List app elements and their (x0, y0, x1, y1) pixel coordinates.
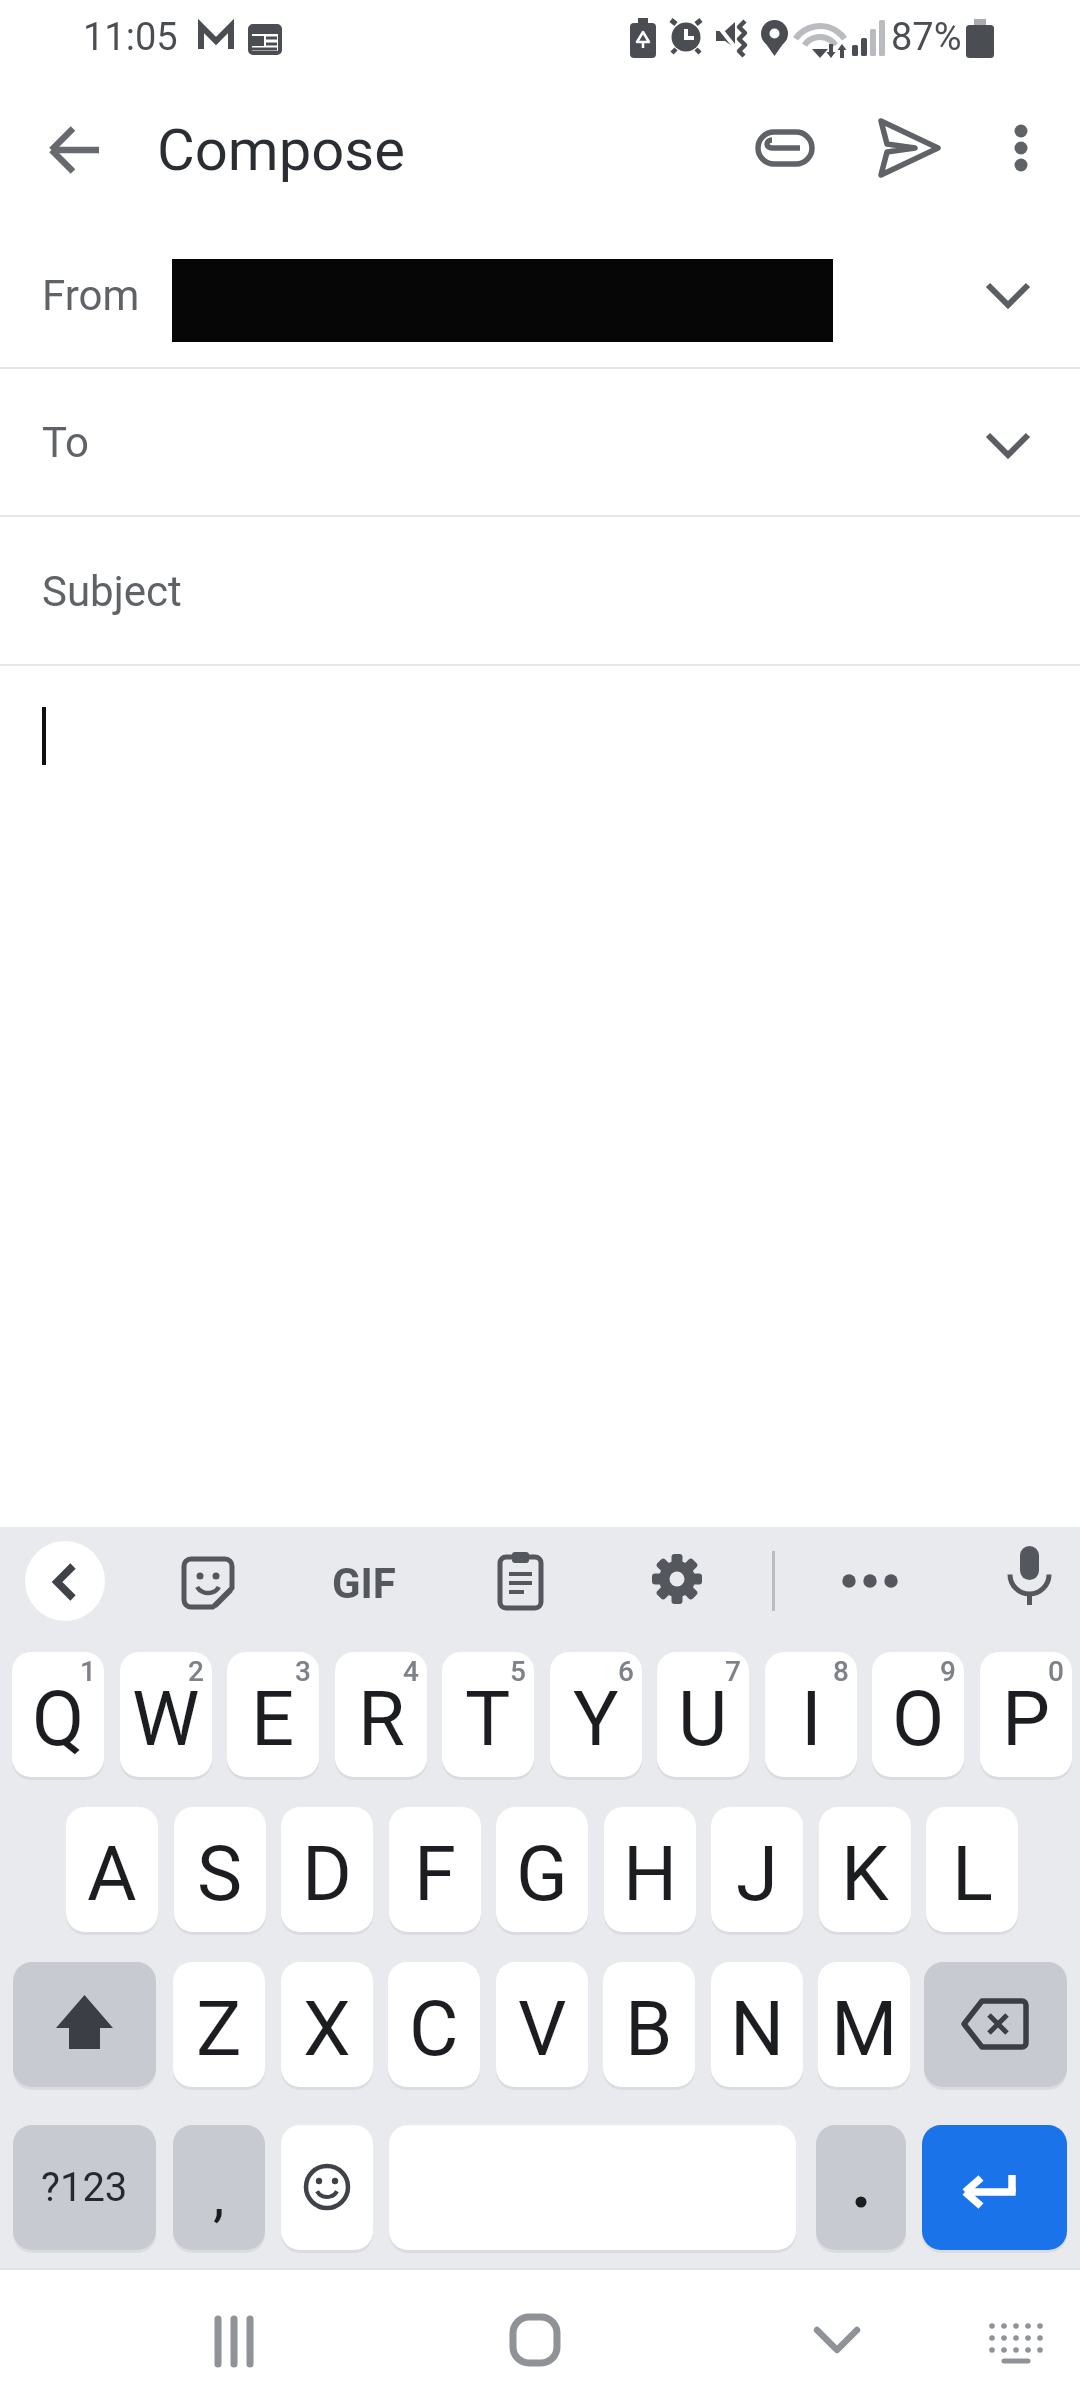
button[interactable]: C (388, 1962, 480, 2087)
button[interactable] (922, 2125, 1067, 2250)
staticText: 7 (725, 1655, 741, 1688)
button[interactable]: T (442, 1652, 534, 1777)
staticText: E (251, 1674, 295, 1763)
staticText: F (414, 1829, 457, 1918)
button[interactable] (738, 100, 834, 196)
staticText: 2 (188, 1655, 204, 1688)
staticText: 0 (1048, 1655, 1064, 1688)
button[interactable]: M (818, 1962, 910, 2087)
button[interactable] (652, 1553, 702, 1605)
staticText: 9 (940, 1655, 956, 1688)
button[interactable] (816, 2125, 906, 2250)
button[interactable]: G (496, 1807, 588, 1932)
button[interactable] (25, 1541, 105, 1621)
button[interactable]: From (0, 222, 1080, 368)
staticText: M (831, 1984, 898, 2073)
button[interactable]: V (496, 1962, 588, 2087)
staticText: D (302, 1829, 352, 1918)
button[interactable] (861, 100, 957, 196)
staticText: U (678, 1674, 728, 1763)
staticText: GIF (332, 1559, 396, 1608)
staticText: W (132, 1674, 200, 1763)
staticText: J (736, 1829, 778, 1918)
staticText: A (87, 1829, 137, 1918)
button[interactable]: Subject (0, 517, 1080, 665)
staticText: ?123 (41, 2164, 128, 2211)
staticText: V (518, 1984, 567, 2073)
button[interactable] (795, 2305, 879, 2375)
staticText: R (358, 1674, 405, 1763)
button[interactable]: P (980, 1652, 1072, 1777)
button[interactable] (832, 1567, 908, 1595)
button[interactable] (13, 1962, 156, 2087)
staticText: 4 (403, 1655, 419, 1688)
button[interactable]: X (281, 1962, 373, 2087)
staticText: , (213, 2161, 225, 2229)
staticText: From (42, 271, 140, 320)
staticText: 5 (510, 1655, 526, 1688)
button[interactable] (1000, 1543, 1060, 1617)
staticText: B (625, 1984, 673, 2073)
staticText: Z (196, 1984, 242, 2073)
staticText: Y (573, 1674, 619, 1763)
button[interactable]: D (281, 1807, 373, 1932)
staticText: T (465, 1674, 511, 1763)
staticText: 87% (891, 15, 962, 60)
staticText: 8 (833, 1655, 849, 1688)
button[interactable]: B (603, 1962, 695, 2087)
staticText: Subject (42, 567, 182, 616)
button[interactable]: E (227, 1652, 319, 1777)
staticText: 6 (618, 1655, 634, 1688)
button[interactable]: I (765, 1652, 857, 1777)
button[interactable]: W (120, 1652, 212, 1777)
button[interactable]: U (657, 1652, 749, 1777)
button[interactable]: H (604, 1807, 696, 1932)
staticText: P (1002, 1674, 1050, 1763)
button[interactable]: Y (550, 1652, 642, 1777)
button[interactable]: A (66, 1807, 158, 1932)
button[interactable] (192, 2300, 276, 2384)
button[interactable]: L (926, 1807, 1018, 1932)
button[interactable]: , (173, 2125, 265, 2250)
button[interactable]: Z (173, 1962, 265, 2087)
button[interactable] (924, 1962, 1067, 2087)
button[interactable]: GIF (324, 1555, 404, 1611)
staticText: L (952, 1829, 993, 1918)
staticText: I (801, 1674, 822, 1763)
staticText: Compose (157, 116, 406, 184)
staticText: 11:05 (83, 15, 178, 60)
button[interactable] (496, 1551, 546, 1613)
staticText: To (42, 418, 89, 467)
button[interactable] (281, 2125, 373, 2250)
button[interactable] (181, 1556, 237, 1612)
button[interactable]: K (819, 1807, 911, 1932)
button[interactable] (978, 2300, 1054, 2376)
button[interactable] (985, 100, 1057, 196)
staticText: S (197, 1829, 243, 1918)
button[interactable]: R (335, 1652, 427, 1777)
staticText: 3 (295, 1655, 311, 1688)
button[interactable]: F (389, 1807, 481, 1932)
button[interactable] (28, 102, 124, 198)
button[interactable] (0, 666, 1080, 1524)
button[interactable]: O (872, 1652, 964, 1777)
staticText: X (303, 1984, 351, 2073)
staticText: O (892, 1674, 945, 1763)
button[interactable]: N (711, 1962, 803, 2087)
button[interactable]: Q (12, 1652, 104, 1777)
staticText: 1 (80, 1655, 96, 1688)
staticText: Q (32, 1674, 85, 1763)
staticText: C (409, 1984, 459, 2073)
button[interactable]: ?123 (13, 2125, 156, 2250)
button[interactable]: To (0, 369, 1080, 516)
staticText: H (623, 1829, 678, 1918)
staticText: K (841, 1829, 889, 1918)
button[interactable] (493, 2298, 577, 2382)
staticText: N (730, 1984, 785, 2073)
button[interactable]: S (174, 1807, 266, 1932)
button[interactable]: J (711, 1807, 803, 1932)
staticText: G (516, 1829, 568, 1918)
